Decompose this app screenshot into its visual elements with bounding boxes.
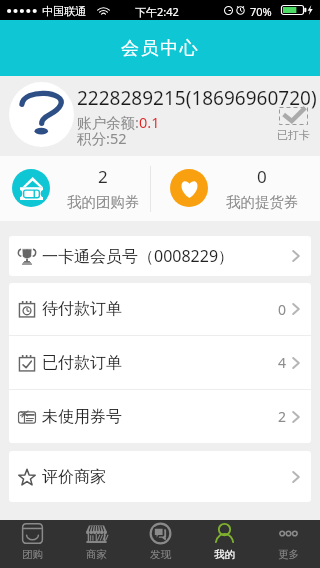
staticText: 我的提货券 bbox=[226, 193, 299, 211]
button[interactable]: Avatar bbox=[9, 82, 74, 147]
staticText: 0 bbox=[278, 300, 287, 319]
staticText: 待付款订单 bbox=[42, 299, 122, 319]
staticText: 我的 bbox=[214, 548, 235, 561]
staticText: 2228289215(18696960720) bbox=[77, 85, 317, 111]
staticText: 70% bbox=[250, 4, 272, 19]
button[interactable]: Check in bbox=[277, 107, 310, 142]
staticText: 评价商家 bbox=[42, 467, 106, 487]
staticText: 2 bbox=[98, 165, 108, 188]
button[interactable]: 更多 bbox=[256, 520, 320, 568]
staticText: 我的团购券 bbox=[67, 193, 140, 211]
button[interactable] bbox=[151, 156, 320, 221]
staticText: 商家 bbox=[86, 548, 107, 561]
staticText: 0.1 bbox=[139, 112, 160, 132]
staticText: 已付款订单 bbox=[42, 353, 122, 373]
staticText: 一卡通会员号（0008229） bbox=[42, 245, 235, 267]
staticText: 0 bbox=[257, 165, 267, 188]
button[interactable]: 一卡通会员号（0008229） bbox=[9, 236, 311, 276]
button[interactable] bbox=[0, 156, 150, 221]
staticText: 发现 bbox=[150, 548, 171, 561]
staticText: 账户余额: bbox=[77, 112, 139, 132]
staticText: 未使用券号 bbox=[42, 407, 122, 427]
staticText: 团购 bbox=[22, 548, 43, 561]
staticText: 已打卡 bbox=[277, 128, 310, 142]
button[interactable]: 评价商家 bbox=[9, 451, 311, 502]
button[interactable]: 商家 bbox=[64, 520, 128, 568]
staticText: 会员中心 bbox=[121, 37, 200, 60]
button[interactable]: 团购 bbox=[0, 520, 64, 568]
staticText: 更多 bbox=[278, 548, 299, 561]
staticText: 积分:52 bbox=[77, 128, 127, 148]
staticText: 2 bbox=[278, 407, 287, 426]
staticText: 下午2:42 bbox=[135, 4, 179, 19]
button[interactable]: 我的 bbox=[192, 520, 256, 568]
button[interactable]: 待付款订单 bbox=[9, 283, 311, 335]
staticText: 中国联通 bbox=[42, 4, 86, 18]
button[interactable]: 未使用券号 bbox=[9, 390, 311, 443]
staticText: 4 bbox=[278, 353, 287, 372]
button[interactable]: 已付款订单 bbox=[9, 336, 311, 389]
button[interactable]: 发现 bbox=[128, 520, 192, 568]
